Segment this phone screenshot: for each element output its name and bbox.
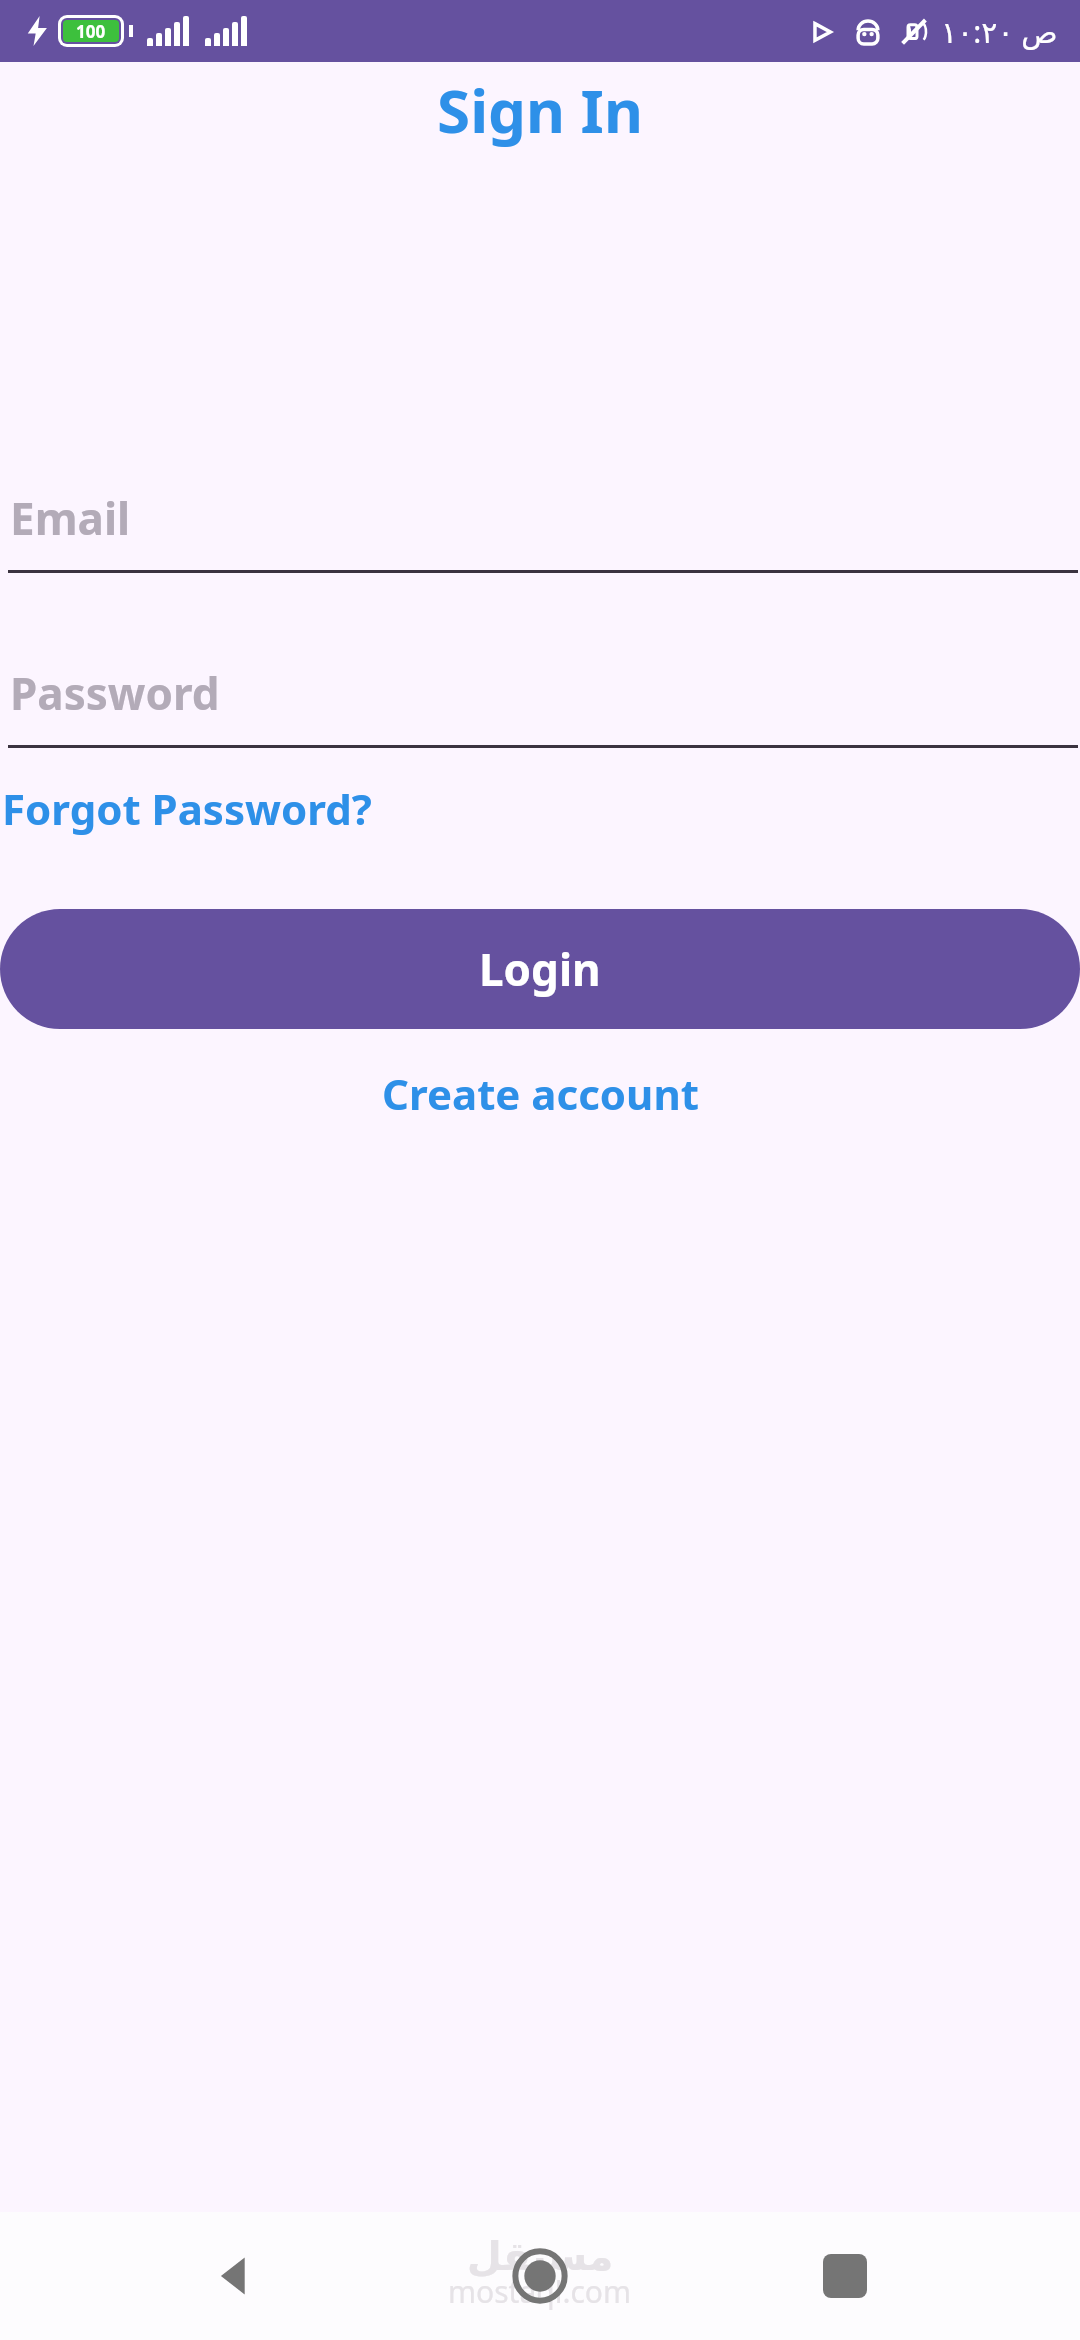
staticText: ص ١٠:٢٠ — [941, 11, 1058, 52]
staticText: Sign In — [437, 69, 643, 151]
button[interactable]: Home — [485, 2221, 595, 2331]
button[interactable]: Forgot Password? — [0, 774, 386, 843]
staticText: مستقل — [467, 2233, 614, 2280]
button[interactable]: Back — [180, 2221, 290, 2331]
staticText: Create account — [382, 1065, 699, 1122]
staticText: Forgot Password? — [2, 780, 372, 837]
button[interactable]: Password — [0, 663, 1080, 748]
staticText: Password — [10, 663, 220, 723]
button[interactable]: Login — [0, 909, 1080, 1029]
button[interactable]: Email — [0, 488, 1080, 573]
staticText: Email — [10, 488, 131, 548]
staticText: mostaql.com — [448, 2271, 632, 2312]
staticText: 100 — [76, 20, 106, 42]
button[interactable]: Recent apps — [790, 2221, 900, 2331]
button[interactable]: Create account — [366, 1057, 715, 1130]
staticText: Login — [479, 939, 601, 999]
